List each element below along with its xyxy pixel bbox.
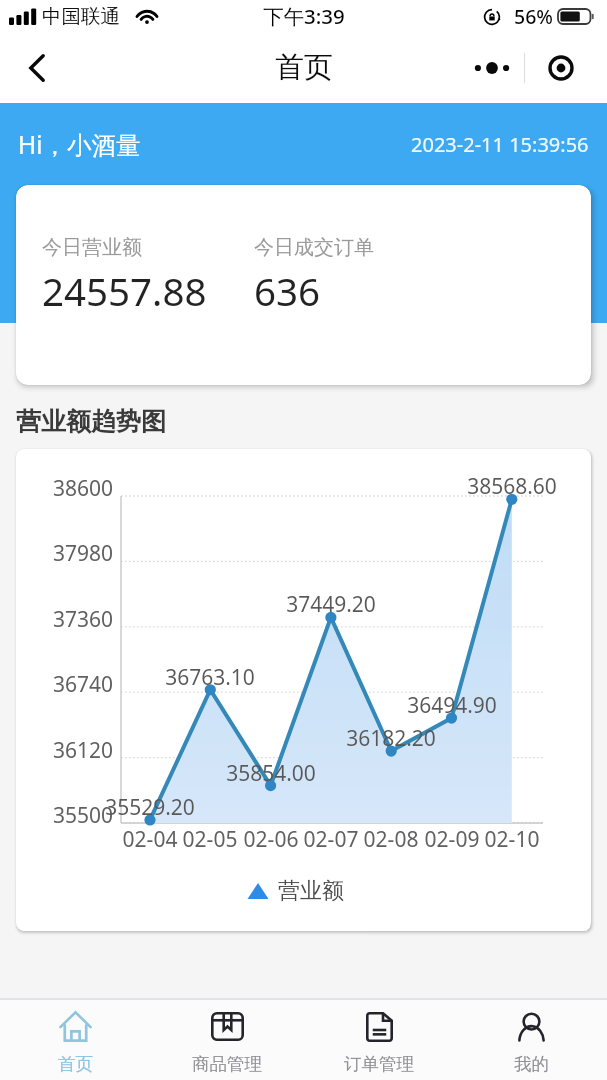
staticText: 02-07 — [296, 825, 366, 854]
staticText: 02-09 — [417, 825, 487, 854]
staticText: 中国联通 — [42, 4, 120, 29]
staticText: 营业额 — [278, 877, 344, 905]
button[interactable]: 订单管理 — [303, 1000, 455, 1075]
staticText: 24557.88 — [42, 265, 254, 317]
button[interactable]: 首页 — [0, 1000, 151, 1075]
staticText: 02-10 — [477, 825, 547, 854]
button[interactable]: 我的 — [455, 1000, 607, 1075]
staticText: 02-05 — [175, 825, 245, 854]
staticText: 02-06 — [236, 825, 306, 854]
staticText: 37449.20 — [271, 590, 391, 619]
staticText: 2023-2-11 15:39:56 — [411, 131, 589, 158]
staticText: 36120 — [16, 736, 113, 765]
button[interactable]: Close — [535, 46, 587, 90]
staticText: 02-08 — [356, 825, 426, 854]
staticText: Hi，小酒量 — [18, 128, 141, 161]
staticText: 我的 — [514, 1053, 549, 1075]
staticText: 56% — [514, 3, 553, 30]
staticText: 首页 — [58, 1053, 93, 1075]
staticText: 36182.20 — [331, 724, 451, 753]
staticText: 下午3:39 — [263, 2, 345, 30]
staticText: 35854.00 — [211, 759, 331, 788]
button[interactable]: 今日营业额 — [16, 185, 591, 385]
button[interactable]: Back — [18, 46, 55, 90]
staticText: 636 — [254, 265, 321, 317]
staticText: 37360 — [16, 605, 113, 634]
staticText: 35529.20 — [90, 793, 210, 822]
staticText: 38568.60 — [452, 472, 572, 501]
staticText: 首页 — [275, 49, 333, 86]
staticText: 订单管理 — [344, 1053, 414, 1075]
staticText: 38600 — [16, 474, 113, 503]
staticText: 37980 — [16, 539, 113, 568]
staticText: 02-04 — [115, 825, 185, 854]
staticText: 今日营业额 — [42, 235, 254, 260]
staticText: 36763.10 — [150, 663, 270, 692]
staticText: 今日成交订单 — [254, 235, 374, 260]
staticText: 36494.90 — [392, 691, 512, 720]
staticText: 商品管理 — [192, 1053, 262, 1075]
staticText: 35500 — [16, 801, 113, 830]
button[interactable]: 商品管理 — [151, 1000, 303, 1075]
staticText: 36740 — [16, 670, 113, 699]
button[interactable]: More — [466, 46, 518, 90]
staticText: 营业额趋势图 — [16, 406, 166, 437]
